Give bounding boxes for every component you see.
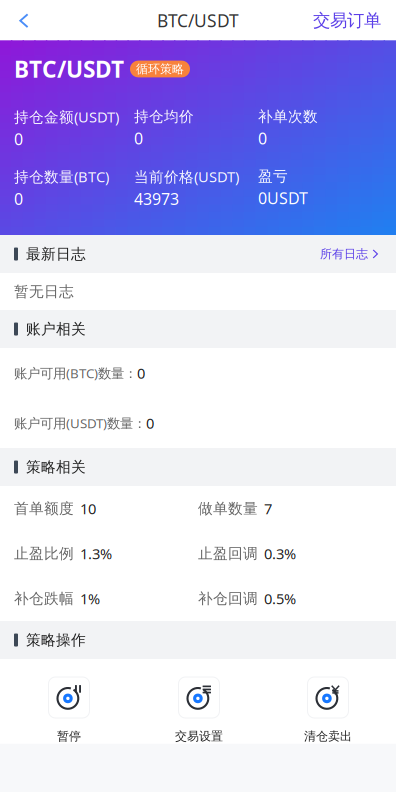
staticText: BTC/USDT (157, 9, 239, 32)
staticText: 当前价格(USDT) (134, 167, 239, 186)
staticText: 10 (80, 499, 96, 518)
staticText: BTC/USDT (14, 54, 124, 84)
staticText: 账户可用(BTC)数量： (14, 364, 137, 382)
staticText: 0 (137, 363, 145, 383)
staticText: 补仓跌幅 (14, 589, 74, 607)
button[interactable]: 交易订单 (313, 0, 396, 41)
staticText: 循环策略 (136, 62, 184, 76)
staticText: 1% (80, 589, 100, 608)
staticText: 首单额度 (14, 499, 74, 517)
staticText: 0USDT (258, 187, 308, 209)
staticText: 0 (146, 413, 154, 433)
button[interactable]: 交易设置 (138, 677, 260, 744)
staticText: 暂停 (57, 729, 81, 744)
staticText: 交易订单 (313, 10, 381, 31)
staticText: 策略操作 (26, 631, 86, 649)
staticText: 账户相关 (26, 320, 86, 338)
staticText: 补仓回调 (198, 589, 258, 607)
staticText: 0 (258, 128, 267, 149)
staticText: 补单次数 (258, 108, 318, 126)
staticText: 交易设置 (175, 729, 223, 744)
staticText: 0.5% (264, 589, 296, 608)
staticText: 7 (264, 499, 272, 518)
staticText: 1.3% (80, 544, 112, 563)
staticText: 最新日志 (26, 245, 86, 263)
staticText: 持仓均价 (134, 108, 194, 126)
staticText: 盈亏 (258, 167, 288, 185)
button[interactable]: 暂停 (0, 677, 138, 744)
button[interactable]: Back (0, 0, 48, 41)
staticText: 做单数量 (198, 499, 258, 517)
staticText: 策略相关 (26, 458, 86, 476)
staticText: 0 (14, 188, 23, 209)
staticText: 暂无日志 (14, 282, 74, 300)
staticText: 止盈比例 (14, 544, 74, 562)
staticText: 43973 (134, 188, 179, 209)
staticText: 清仓卖出 (304, 729, 352, 744)
staticText: 0 (134, 128, 143, 149)
staticText: 持仓金额(USDT) (14, 107, 119, 126)
staticText: 止盈回调 (198, 544, 258, 562)
staticText: 持仓数量(BTC) (14, 167, 109, 186)
button[interactable]: 所有日志 (310, 239, 379, 269)
staticText: 所有日志 (320, 247, 368, 261)
button[interactable]: 清仓卖出 (260, 677, 396, 744)
staticText: 0.3% (264, 544, 296, 563)
staticText: 账户可用(USDT)数量： (14, 414, 146, 432)
staticText: 0 (14, 128, 23, 150)
